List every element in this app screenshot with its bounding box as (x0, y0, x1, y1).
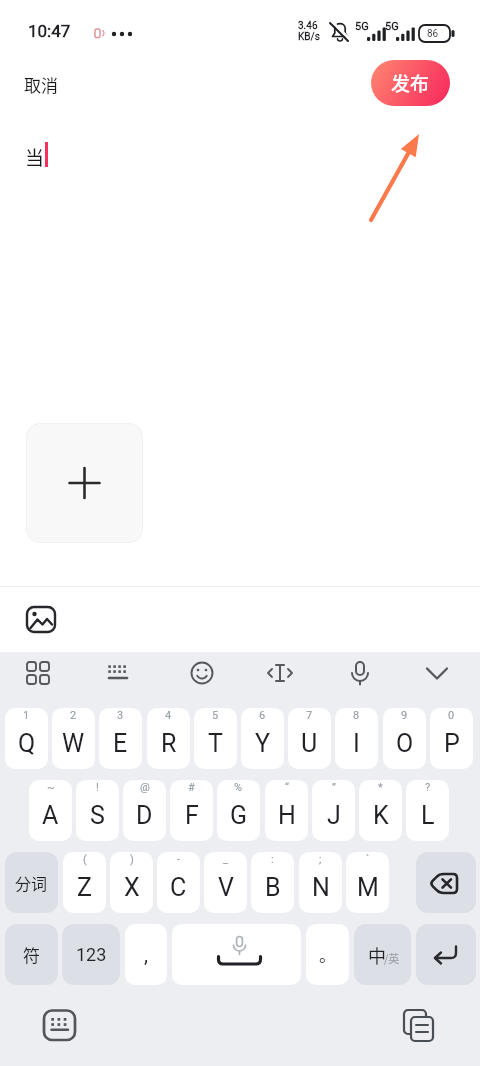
staticText: 0 (448, 709, 455, 722)
staticText: 5 (212, 709, 219, 722)
button[interactable]: “ (265, 780, 308, 841)
staticText: W (62, 729, 85, 758)
staticText: # (188, 781, 195, 794)
staticText: “ (285, 781, 289, 794)
staticText: J (327, 801, 341, 830)
staticText: ( (83, 853, 87, 866)
button[interactable]: 1 (5, 708, 48, 769)
staticText: @ (140, 781, 150, 794)
staticText: ) (130, 853, 134, 866)
staticText: 5G (355, 20, 369, 33)
button[interactable]: , (125, 924, 167, 985)
staticText: ? (425, 781, 431, 794)
button[interactable] (41, 1007, 79, 1045)
staticText: 中 (368, 942, 386, 968)
button[interactable] (416, 924, 476, 985)
button[interactable]: ; (299, 852, 342, 913)
button[interactable]: 8 (335, 708, 378, 769)
button[interactable] (416, 852, 476, 913)
button[interactable]: # (170, 780, 213, 841)
button[interactable]: % (217, 780, 260, 841)
staticText: Y (255, 729, 271, 758)
staticText: 4 (165, 709, 172, 722)
staticText: 符 (23, 942, 40, 967)
button[interactable]: 5 (194, 708, 237, 769)
button[interactable] (398, 1006, 442, 1050)
staticText: Z (77, 873, 92, 902)
staticText: 6 (259, 709, 266, 722)
button[interactable] (24, 603, 58, 635)
button[interactable]: _ (204, 852, 247, 913)
staticText: N (312, 873, 330, 902)
staticText: ” (332, 781, 336, 794)
button[interactable]: - (157, 852, 200, 913)
staticText: I (353, 729, 360, 758)
staticText: A (42, 801, 59, 830)
button[interactable] (172, 924, 301, 985)
staticText: ; (319, 853, 322, 866)
staticText: T (208, 729, 223, 758)
staticText: Q (18, 729, 36, 758)
button[interactable]: ! (76, 780, 119, 841)
staticText: C (170, 873, 187, 902)
button[interactable]: 分词 (5, 852, 58, 913)
staticText: 123 (76, 944, 107, 965)
button[interactable]: ? (406, 780, 449, 841)
staticText: H (278, 801, 296, 830)
button[interactable]: 123 (62, 924, 120, 985)
staticText: P (444, 729, 460, 758)
staticText: 7 (306, 709, 313, 722)
staticText: 1 (23, 709, 30, 722)
button[interactable] (26, 423, 143, 543)
staticText: U (301, 729, 318, 758)
staticText: KB/s (298, 31, 320, 43)
staticText: 3.46 (298, 20, 318, 32)
button[interactable]: 6 (241, 708, 284, 769)
staticText: 取消 (24, 72, 58, 97)
staticText: D (136, 801, 153, 830)
button[interactable]: ) (110, 852, 153, 913)
staticText: 3 (117, 709, 124, 722)
staticText: ! (96, 781, 99, 794)
staticText: 9 (401, 709, 408, 722)
button[interactable]: ” (312, 780, 355, 841)
staticText: , (144, 943, 148, 966)
button[interactable]: 发布 (371, 60, 450, 106)
staticText: V (218, 873, 234, 902)
staticText: L (421, 801, 435, 830)
button[interactable]: 0 (430, 708, 473, 769)
button[interactable]: 9 (383, 708, 426, 769)
staticText: 10:47 (28, 21, 71, 41)
button[interactable]: 3 (99, 708, 142, 769)
button[interactable]: 中 (354, 924, 411, 985)
staticText: 当 (25, 143, 45, 171)
staticText: * (378, 781, 383, 794)
staticText: : (271, 853, 274, 866)
button[interactable]: 4 (147, 708, 190, 769)
button[interactable]: 7 (288, 708, 331, 769)
staticText: 2 (70, 709, 77, 722)
button[interactable]: 取消 (18, 66, 52, 91)
staticText: 。 (319, 942, 336, 967)
staticText: S (90, 801, 105, 830)
button[interactable]: @ (123, 780, 166, 841)
staticText: 发布 (391, 69, 430, 97)
staticText: ~ (47, 781, 55, 794)
staticText: G (230, 801, 248, 830)
staticText: _ (223, 853, 228, 866)
staticText: B (265, 873, 281, 902)
staticText: M (357, 873, 379, 902)
button[interactable]: ~ (29, 780, 72, 841)
staticText: 86 (427, 28, 439, 40)
button[interactable]: 符 (5, 924, 58, 985)
button[interactable]: ( (63, 852, 106, 913)
button[interactable]: 。 (306, 924, 349, 985)
button[interactable]: 2 (52, 708, 95, 769)
staticText: O (396, 729, 414, 758)
button[interactable]: : (251, 852, 294, 913)
staticText: ` (366, 853, 370, 866)
staticText: E (113, 729, 128, 758)
button[interactable]: * (359, 780, 402, 841)
staticText: R (161, 729, 177, 758)
button[interactable]: ` (346, 852, 389, 913)
